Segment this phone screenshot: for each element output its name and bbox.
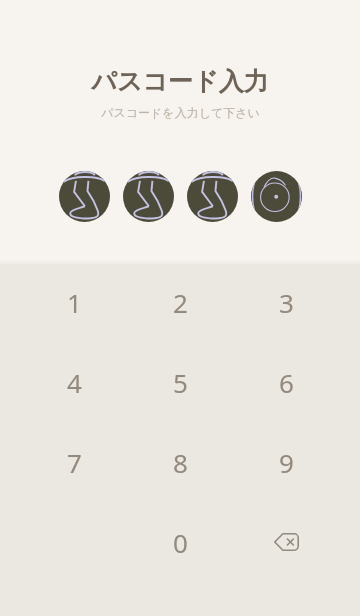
staticText: 5 (173, 365, 188, 400)
staticText: 3 (279, 285, 294, 320)
staticText: 7 (67, 445, 82, 480)
staticText: 9 (279, 445, 294, 480)
button[interactable]: 8 (127, 422, 233, 502)
button[interactable]: Delete (233, 502, 339, 582)
staticText: 4 (67, 365, 82, 400)
button[interactable]: 9 (233, 422, 339, 502)
staticText: 6 (279, 365, 294, 400)
staticText: 2 (173, 285, 188, 320)
button[interactable]: 7 (21, 422, 127, 502)
staticText: パスコード入力 (91, 66, 269, 97)
button[interactable]: 2 (127, 262, 233, 342)
staticText: パスコードを入力して下さい (101, 105, 260, 120)
button[interactable]: 1 (21, 262, 127, 342)
button[interactable]: 0 (127, 502, 233, 582)
button[interactable]: 5 (127, 342, 233, 422)
button[interactable]: 6 (233, 342, 339, 422)
button[interactable]: 4 (21, 342, 127, 422)
staticText: 8 (173, 445, 188, 480)
staticText: 1 (67, 285, 82, 320)
button[interactable]: 3 (233, 262, 339, 342)
staticText: 0 (173, 525, 188, 560)
